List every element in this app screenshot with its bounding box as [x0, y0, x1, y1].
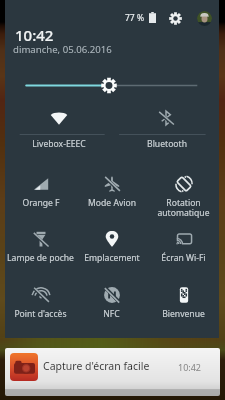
- staticText: 10:42: [15, 25, 54, 45]
- staticText: Capture d'écran facile: [43, 359, 150, 373]
- button[interactable]: Lampe de poche: [5, 228, 76, 278]
- button[interactable]: dimanche, 05.06.2016: [13, 43, 112, 56]
- button[interactable]: Utilisateur: [192, 6, 217, 31]
- button[interactable]: Bienvenue: [148, 284, 219, 334]
- staticText: Mode Avion: [88, 197, 136, 209]
- staticText: Écran Wi-Fi: [161, 252, 206, 264]
- button[interactable]: Orange F: [5, 173, 76, 223]
- button[interactable]: Luminosité: [5, 75, 219, 97]
- staticText: 77 %: [125, 12, 144, 24]
- staticText: Rotation automatique: [157, 197, 210, 219]
- button[interactable]: Point d'accès: [5, 284, 76, 334]
- staticText: 10:42: [178, 361, 202, 373]
- staticText: NFC: [103, 308, 120, 320]
- button[interactable]: Bluetooth: [113, 100, 220, 152]
- staticText: Bienvenue: [162, 308, 205, 320]
- button[interactable]: Capture d'écran facile: [5, 348, 220, 396]
- button[interactable]: NFC: [76, 284, 147, 334]
- button[interactable]: Rotation automatique: [148, 173, 219, 223]
- staticText: Bluetooth: [147, 138, 187, 150]
- staticText: Lampe de poche: [7, 252, 74, 264]
- staticText: Orange F: [22, 197, 60, 209]
- button[interactable]: Paramètres: [162, 5, 188, 31]
- button[interactable]: Écran Wi-Fi: [148, 228, 219, 278]
- button[interactable]: Emplacement: [76, 228, 147, 278]
- button[interactable]: 10:42: [15, 25, 54, 45]
- button[interactable]: Mode Avion: [76, 173, 147, 223]
- button[interactable]: Livebox-EEEC: [5, 100, 113, 152]
- staticText: Point d'accès: [14, 308, 67, 320]
- staticText: Livebox-EEEC: [32, 138, 86, 150]
- staticText: Emplacement: [84, 252, 140, 264]
- staticText: dimanche, 05.06.2016: [13, 43, 112, 56]
